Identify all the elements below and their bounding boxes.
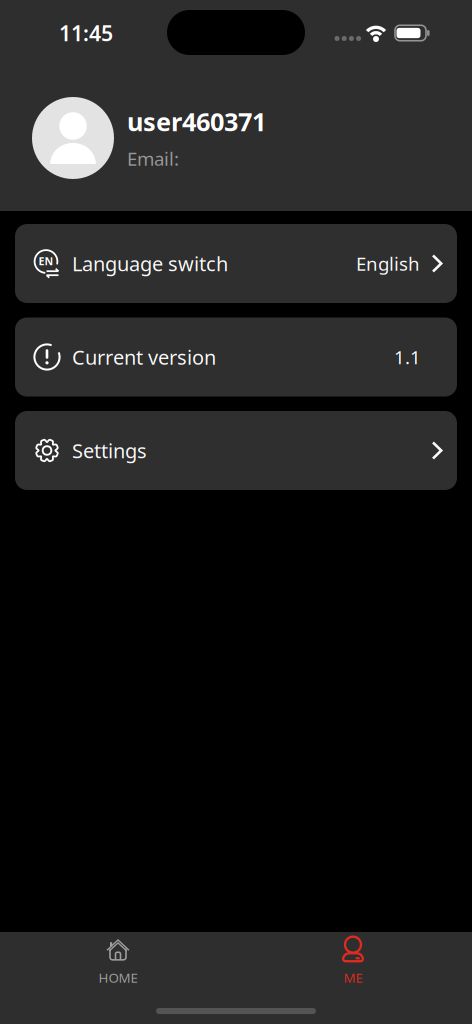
staticText: HOME xyxy=(98,969,137,986)
staticText: English xyxy=(356,251,420,276)
staticText: Current version xyxy=(72,344,216,370)
staticText: 11:45 xyxy=(59,19,113,47)
staticText: Email: xyxy=(127,146,179,171)
staticText: user460371 xyxy=(127,105,266,138)
staticText: EN xyxy=(38,254,53,268)
button[interactable]: Home xyxy=(58,933,178,991)
button[interactable]: EN xyxy=(15,224,457,303)
staticText: Settings xyxy=(72,437,147,464)
button[interactable]: Current version xyxy=(15,317,457,396)
button[interactable]: Settings xyxy=(15,411,457,490)
button[interactable]: Me xyxy=(293,932,413,990)
staticText: 1.1 xyxy=(394,345,421,369)
staticText: ME xyxy=(343,969,362,986)
staticText: Language switch xyxy=(72,250,228,277)
